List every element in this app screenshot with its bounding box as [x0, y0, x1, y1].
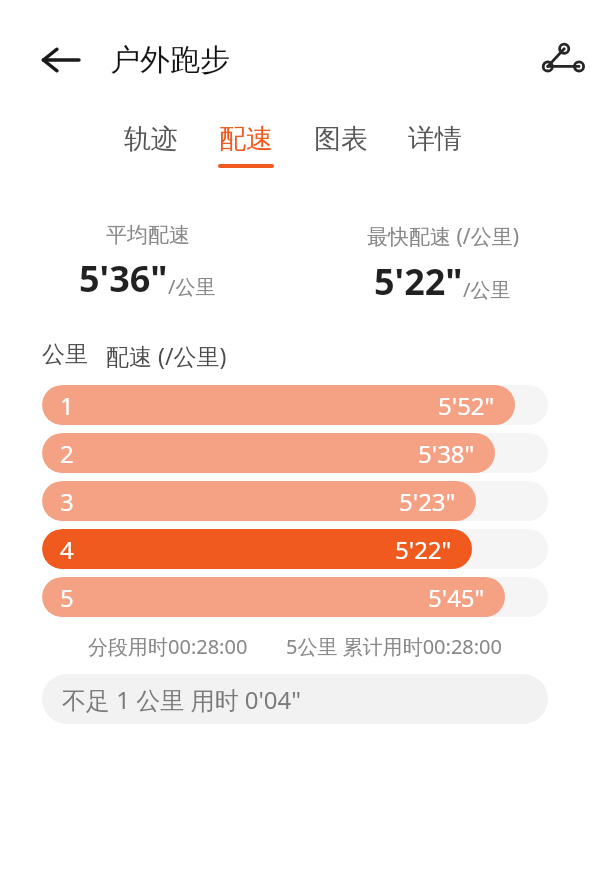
button[interactable]: 3	[42, 481, 548, 521]
button[interactable]: 5	[42, 577, 548, 617]
staticText: 1	[60, 389, 74, 422]
button[interactable]: 图表	[310, 120, 372, 170]
staticText: 4	[60, 533, 74, 566]
button[interactable]: 轨迹	[120, 120, 182, 170]
staticText: 配速	[219, 122, 273, 156]
staticText: 平均配速	[106, 222, 190, 248]
staticText: /公里	[463, 276, 511, 303]
staticText: 5'23"	[399, 485, 456, 518]
staticText: 5'22"	[395, 533, 452, 566]
staticText: 公里	[42, 340, 88, 369]
button[interactable]: 不足 1 公里 用时 0'04"	[42, 674, 548, 724]
staticText: /公里	[168, 273, 216, 300]
staticText: 分段用时00:28:00	[88, 633, 248, 660]
staticText: 5'22"	[374, 257, 463, 306]
staticText: 轨迹	[124, 122, 178, 156]
button[interactable]: 4	[42, 529, 548, 569]
button[interactable]: 2	[42, 433, 548, 473]
staticText: 5'36"	[79, 254, 168, 303]
staticText: 图表	[314, 122, 368, 156]
staticText: 最快配速 (/公里)	[367, 222, 519, 251]
staticText: 3	[60, 485, 74, 518]
staticText: 5	[60, 581, 74, 614]
staticText: 详情	[408, 122, 462, 156]
staticText: 5'45"	[428, 581, 485, 614]
staticText: 5公里 累计用时00:28:00	[286, 633, 502, 660]
staticText: 2	[60, 437, 74, 470]
staticText: 配速 (/公里)	[106, 340, 227, 371]
staticText: 不足 1 公里 用时 0'04"	[62, 683, 302, 716]
staticText: 5'38"	[418, 437, 475, 470]
button[interactable]: 配速	[214, 120, 278, 170]
button[interactable]: 详情	[404, 120, 466, 170]
staticText: 户外跑步	[110, 41, 230, 79]
button[interactable]: Back	[34, 33, 88, 87]
staticText: 5'52"	[438, 389, 495, 422]
button[interactable]: 1	[42, 385, 548, 425]
button[interactable]: Share	[530, 31, 588, 89]
